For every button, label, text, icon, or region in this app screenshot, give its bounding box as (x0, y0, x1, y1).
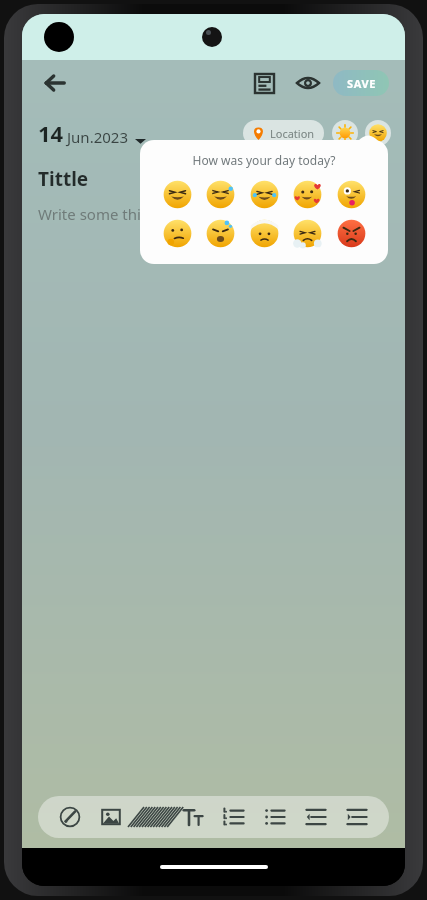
staticText: Location (270, 126, 315, 141)
button[interactable]: Mood 4 (335, 178, 368, 211)
button[interactable]: Mood 6 (204, 217, 237, 250)
button[interactable]: Mood 7 (248, 217, 281, 250)
button[interactable]: Draw (53, 800, 87, 834)
button[interactable]: Decrease indent (299, 800, 333, 834)
button[interactable]: Mood 8 (291, 217, 324, 250)
button[interactable]: Increase indent (340, 800, 374, 834)
button[interactable]: 14 (38, 118, 146, 148)
button[interactable]: Back (38, 66, 72, 100)
button[interactable]: Bullet list (258, 800, 292, 834)
staticText: Jun.2023 (67, 127, 128, 147)
button[interactable]: Preview (291, 66, 325, 100)
button[interactable]: Background pattern (135, 800, 169, 834)
button[interactable]: Templates (247, 66, 281, 100)
button[interactable]: Mood 5 (161, 217, 194, 250)
button[interactable]: Mood (365, 120, 391, 146)
button[interactable]: Text size (176, 800, 210, 834)
button[interactable]: Write some things... (38, 204, 179, 224)
button[interactable]: Weather (332, 120, 358, 146)
button[interactable]: Mood 2 (248, 178, 281, 211)
staticText: How was your day today? (140, 152, 388, 168)
button[interactable]: Mood 9 (335, 217, 368, 250)
button[interactable]: Mood 3 (291, 178, 324, 211)
button[interactable]: Location (243, 120, 324, 146)
staticText: 14 (38, 118, 64, 148)
button[interactable]: Tittle (38, 166, 89, 192)
staticText: SAVE (347, 76, 376, 91)
button[interactable]: Mood 0 (161, 178, 194, 211)
button[interactable]: Insert image (94, 800, 128, 834)
button[interactable]: SAVE (333, 70, 389, 96)
button[interactable]: Numbered list (217, 800, 251, 834)
button[interactable]: Mood 1 (204, 178, 237, 211)
